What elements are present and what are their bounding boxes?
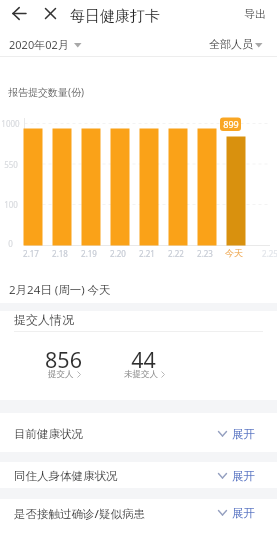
staticText: 2020年02月: [9, 37, 69, 52]
button[interactable]: [45, 8, 56, 19]
staticText: 2.25: [262, 248, 277, 258]
staticText: 提交人情况: [14, 312, 74, 327]
staticText: 同住人身体健康状况: [14, 469, 118, 483]
staticText: 全部人员: [209, 37, 253, 51]
button[interactable]: 导出: [0, 0, 22, 14]
staticText: 展开: [232, 506, 255, 520]
button[interactable]: 全部人员: [200, 32, 270, 56]
staticText: 899: [223, 118, 239, 130]
button[interactable]: 44: [100, 343, 186, 387]
staticText: 856: [45, 345, 82, 369]
staticText: 展开: [232, 427, 255, 441]
button[interactable]: 856: [20, 343, 106, 387]
button[interactable]: 同住人身体健康状况: [0, 462, 277, 488]
button[interactable]: 是否接触过确诊/疑似病患: [0, 499, 277, 535]
staticText: 2.17: [23, 248, 39, 258]
staticText: 2.20: [110, 248, 126, 258]
staticText: 提交人: [48, 369, 74, 380]
staticText: 每日健康打卡: [70, 7, 160, 26]
staticText: 550: [4, 159, 18, 170]
staticText: 2.22: [168, 248, 184, 258]
button[interactable]: [12, 6, 27, 21]
staticText: 未提交人: [124, 369, 158, 380]
staticText: 44: [131, 345, 156, 369]
staticText: 2月24日 (周一) 今天: [9, 282, 111, 298]
staticText: 0: [8, 238, 13, 249]
button[interactable]: 目前健康状况: [0, 413, 277, 452]
staticText: 2.23: [197, 248, 213, 258]
staticText: 100: [4, 199, 18, 210]
staticText: 目前健康状况: [14, 427, 83, 441]
staticText: 是否接触过确诊/疑似病患: [14, 506, 145, 522]
button[interactable]: 2020年02月: [0, 32, 100, 56]
staticText: 2.19: [81, 248, 97, 258]
staticText: 展开: [232, 469, 255, 483]
staticText: 1000: [1, 118, 20, 129]
staticText: 今天: [225, 247, 243, 258]
staticText: 报告提交数量(份): [8, 85, 84, 99]
staticText: 2.21: [139, 248, 155, 258]
staticText: 2.18: [52, 248, 68, 258]
